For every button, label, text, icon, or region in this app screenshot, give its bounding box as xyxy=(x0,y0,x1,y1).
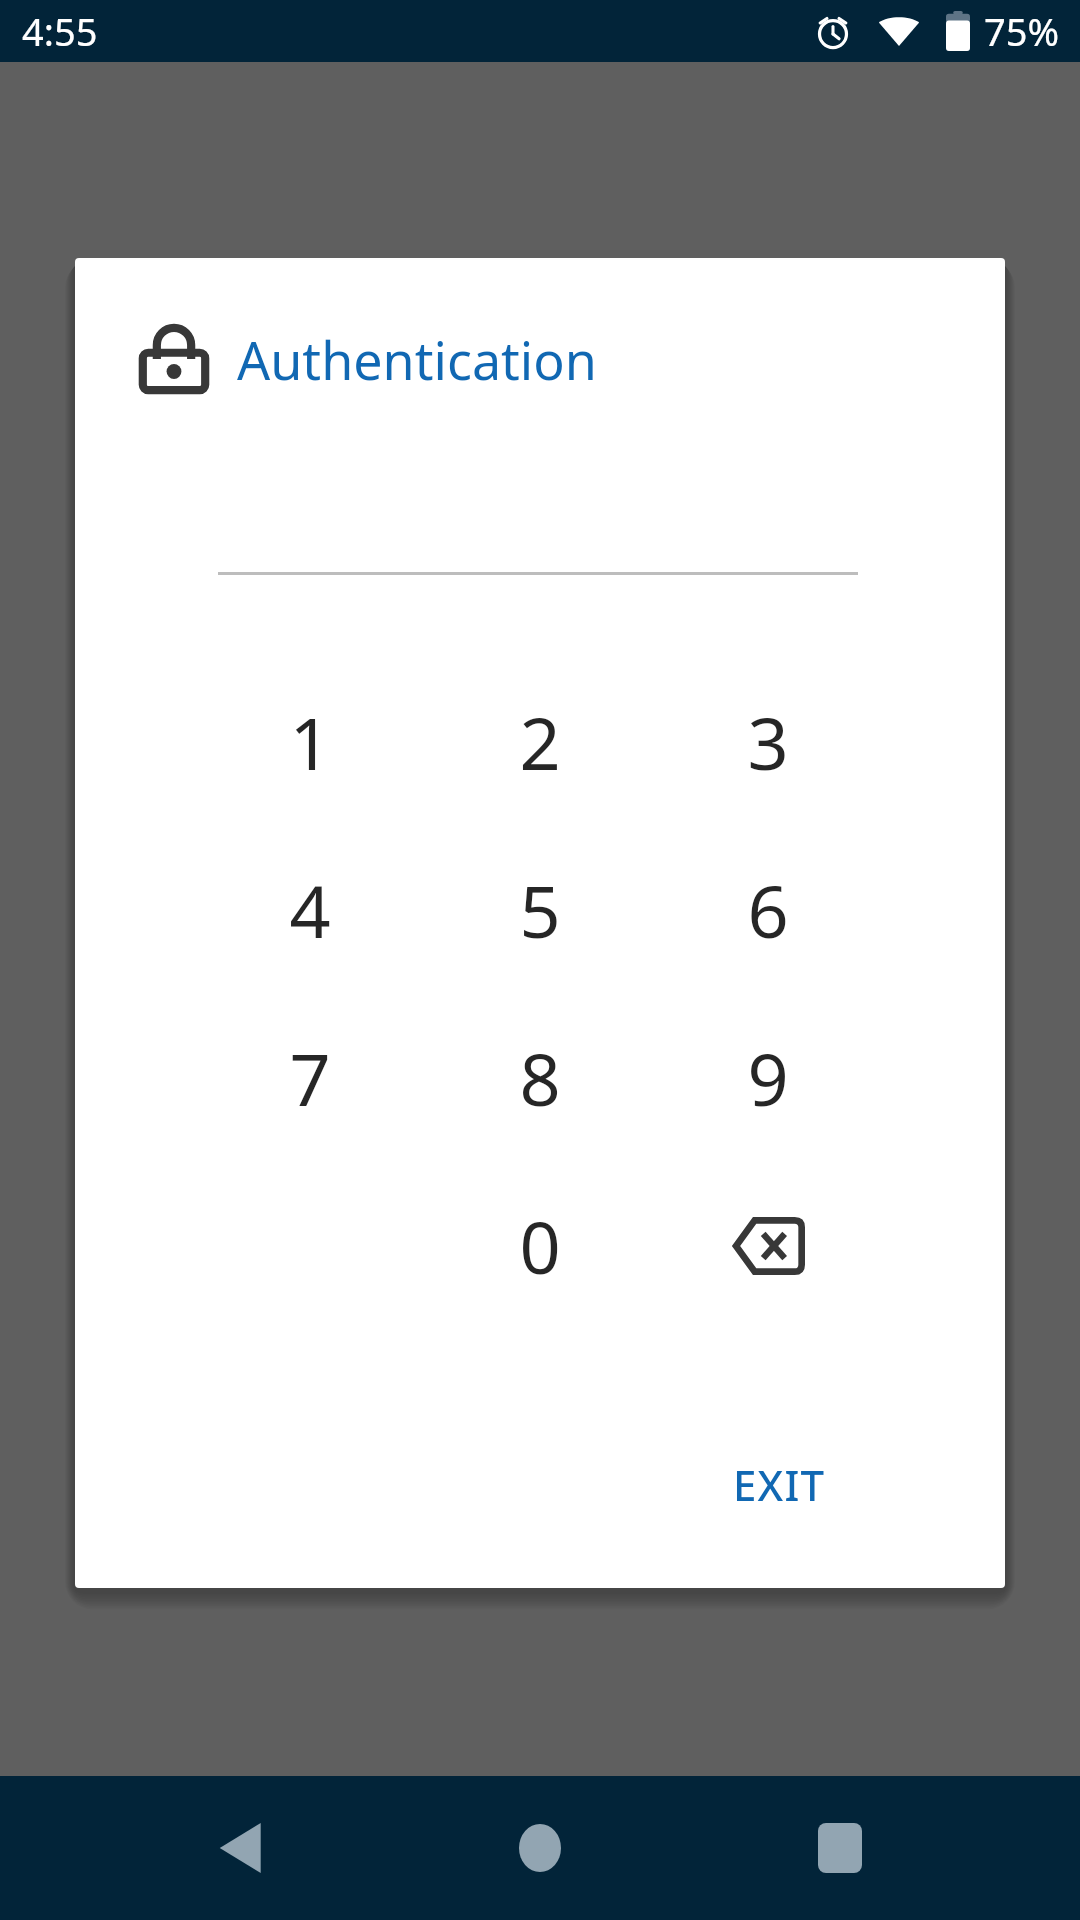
staticText: 4:55 xyxy=(22,5,98,57)
button[interactable]: Backspace xyxy=(683,1162,853,1330)
button[interactable]: 4 xyxy=(225,826,395,994)
button[interactable]: 2 xyxy=(455,658,625,826)
staticText: 1 xyxy=(289,693,331,791)
button[interactable]: 1 xyxy=(225,658,395,826)
staticText: EXIT xyxy=(733,1456,826,1513)
button[interactable]: 8 xyxy=(455,994,625,1162)
staticText: 0 xyxy=(519,1197,561,1295)
button[interactable]: 7 xyxy=(225,994,395,1162)
staticText: 3 xyxy=(747,693,789,791)
button[interactable]: 9 xyxy=(683,994,853,1162)
staticText: Authentication xyxy=(237,324,597,395)
staticText: 8 xyxy=(519,1029,561,1127)
button[interactable]: Home xyxy=(480,1788,600,1908)
staticText: 9 xyxy=(747,1029,789,1127)
staticText: 2 xyxy=(519,693,561,791)
staticText: 5 xyxy=(519,861,561,959)
button[interactable]: EXIT xyxy=(705,1438,854,1531)
button[interactable]: 0 xyxy=(455,1162,625,1330)
button[interactable]: Back xyxy=(180,1788,300,1908)
button[interactable]: Recent apps xyxy=(780,1788,900,1908)
button[interactable]: 5 xyxy=(455,826,625,994)
staticText: 4 xyxy=(289,861,331,959)
staticText: 75% xyxy=(984,5,1060,57)
staticText: 6 xyxy=(747,861,789,959)
button[interactable]: 3 xyxy=(683,658,853,826)
staticText: 7 xyxy=(289,1029,331,1127)
button[interactable]: 6 xyxy=(683,826,853,994)
